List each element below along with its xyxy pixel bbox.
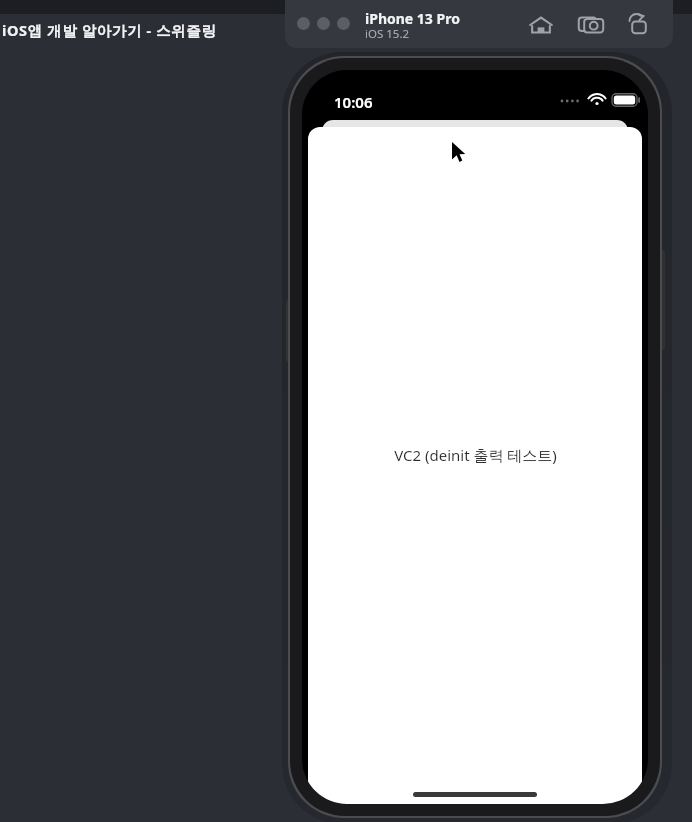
button[interactable]: Rotate [622, 8, 656, 42]
staticText: VC2 (deinit 출력 테스트) [394, 445, 557, 465]
button[interactable]: Screenshot [574, 8, 608, 42]
staticText: iOS앱 개발 알아가기 - 스위즐링 [2, 20, 217, 40]
staticText: 10:06 [334, 92, 373, 112]
staticText: iOS 15.2 [365, 26, 410, 42]
button[interactable]: VC2 (deinit 출력 테스트) [308, 127, 642, 804]
button[interactable]: Home [524, 8, 558, 42]
staticText: iPhone 13 Pro [365, 9, 460, 28]
button[interactable]: Window controls [297, 17, 357, 30]
